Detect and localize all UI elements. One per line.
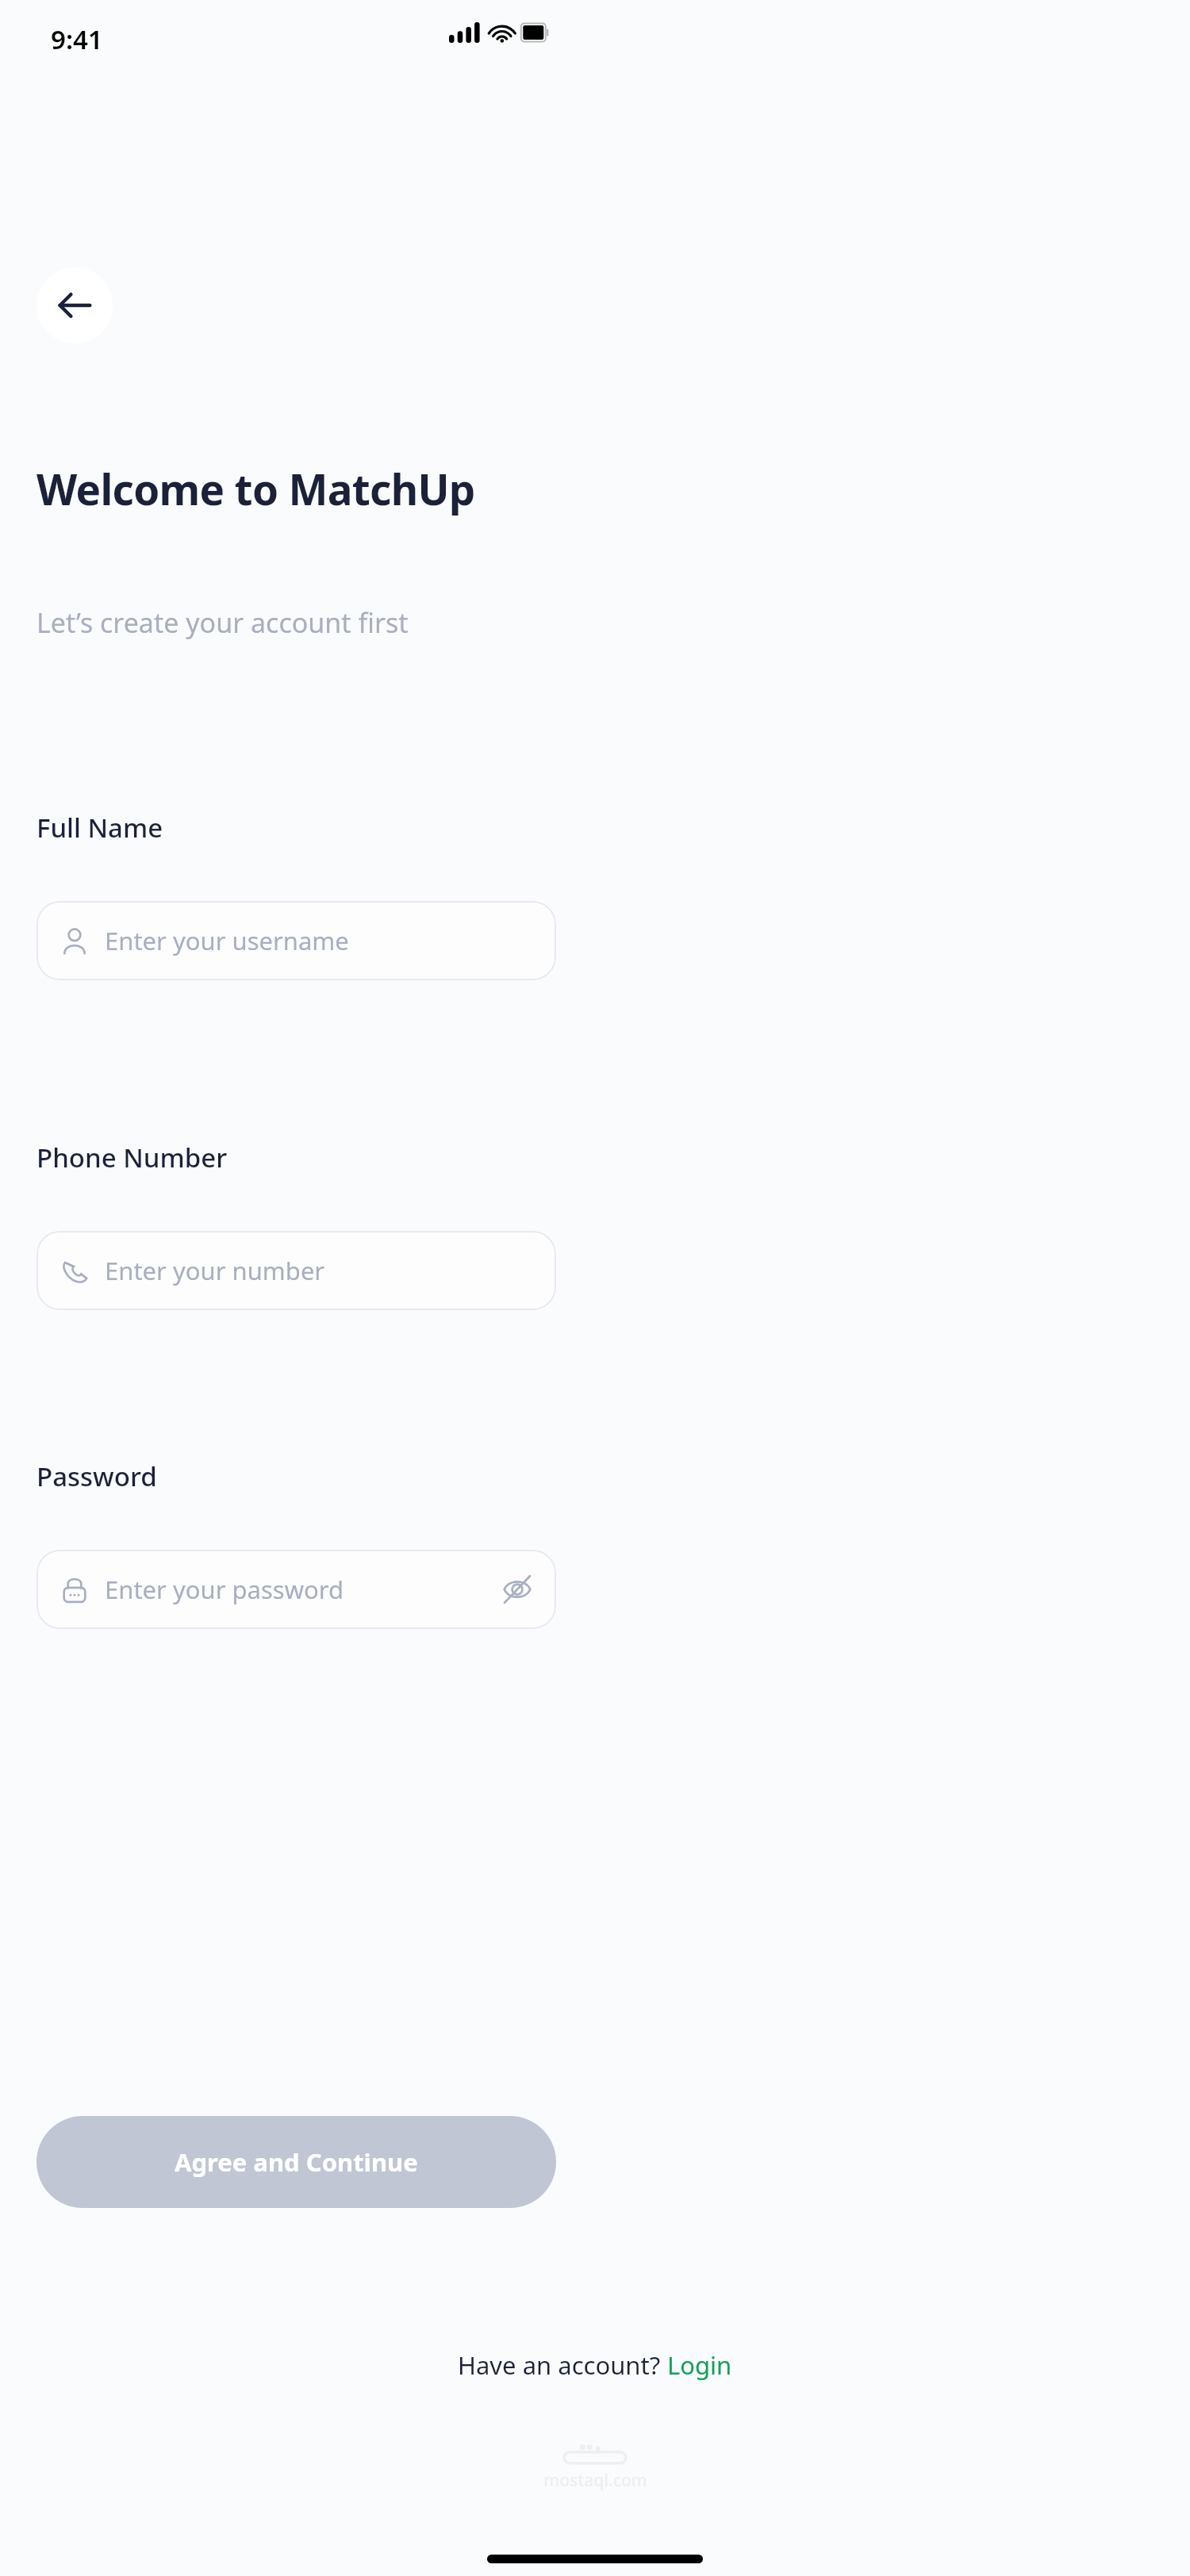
button[interactable]: Show password — [499, 1571, 535, 1608]
button[interactable]: Enter your password — [36, 1550, 556, 1629]
button[interactable]: Enter your username — [36, 901, 556, 980]
staticText: mostaql.com — [543, 2469, 647, 2492]
button[interactable]: Enter your number — [36, 1231, 556, 1310]
staticText: Welcome to MatchUp — [36, 460, 475, 517]
staticText: 9:41 — [51, 21, 103, 57]
staticText: Enter your number — [105, 1254, 325, 1287]
staticText: Login — [667, 2348, 732, 2382]
staticText: Full Name — [36, 810, 163, 845]
staticText: Let’s create your account first — [36, 604, 409, 641]
button[interactable]: Back — [36, 267, 113, 343]
button[interactable]: Agree and Continue — [36, 2116, 556, 2208]
staticText: Enter your password — [105, 1573, 344, 1606]
staticText: Password — [36, 1459, 157, 1494]
staticText: Agree and Continue — [175, 2145, 418, 2179]
staticText: Phone Number — [36, 1140, 228, 1175]
staticText: Enter your username — [105, 924, 349, 957]
button[interactable]: Login — [667, 2348, 732, 2382]
staticText: Have an account? — [458, 2348, 667, 2382]
